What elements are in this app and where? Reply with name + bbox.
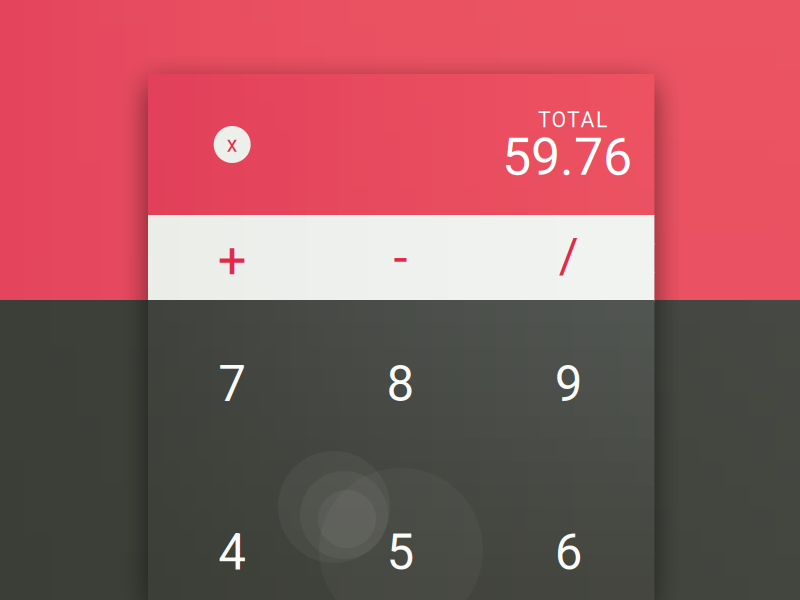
staticText: TOTAL <box>538 107 607 132</box>
button[interactable]: Clear <box>200 112 264 176</box>
staticText: x <box>227 132 238 157</box>
button[interactable]: Add <box>148 215 316 300</box>
button[interactable]: 7 <box>148 300 316 468</box>
button[interactable]: 8 <box>316 300 485 468</box>
button[interactable]: Subtract <box>316 215 485 300</box>
staticText: 5 <box>386 524 414 582</box>
button[interactable]: Divide <box>485 215 653 300</box>
button[interactable]: 4 <box>148 468 316 600</box>
staticText: / <box>559 227 579 284</box>
staticText: 6 <box>555 524 583 582</box>
staticText: 7 <box>218 355 246 413</box>
staticText: - <box>393 228 407 287</box>
button[interactable]: 6 <box>485 468 653 600</box>
button[interactable]: 9 <box>485 300 653 468</box>
staticText: + <box>218 231 247 290</box>
staticText: 9 <box>555 355 583 413</box>
staticText: 8 <box>386 355 414 413</box>
button[interactable]: 5 <box>316 468 485 600</box>
staticText: 59.76 <box>502 126 632 187</box>
staticText: 4 <box>218 524 246 582</box>
